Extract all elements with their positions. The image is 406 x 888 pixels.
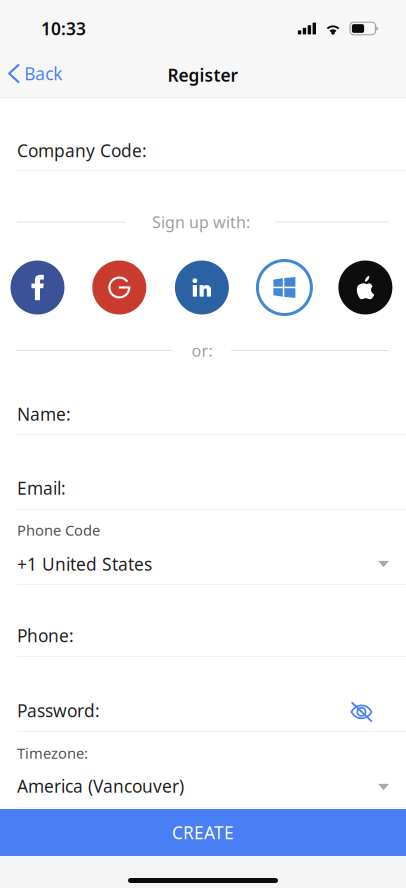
staticText: Password: (17, 699, 100, 722)
staticText: Back (24, 62, 62, 85)
staticText: +1 United States (17, 552, 152, 575)
staticText: Timezone: (17, 743, 88, 763)
button[interactable]: Sign up with Facebook (10, 260, 64, 314)
button[interactable]: Back (0, 51, 74, 95)
button[interactable]: Sign up with Microsoft (257, 260, 311, 314)
staticText: Register (167, 63, 238, 86)
button[interactable]: Sign up with Google (92, 260, 146, 314)
button[interactable]: CREATE (0, 809, 406, 856)
button[interactable]: Sign up with Apple (338, 260, 392, 314)
staticText: CREATE (172, 821, 234, 844)
staticText: America (Vancouver) (17, 774, 184, 797)
staticText: Phone: (17, 624, 74, 647)
staticText: Email: (17, 476, 66, 499)
staticText: Phone Code (17, 520, 100, 540)
staticText: Company Code: (17, 139, 147, 162)
staticText: Sign up with: (152, 211, 250, 233)
staticText: or: (191, 340, 212, 361)
staticText: 10:33 (41, 17, 86, 40)
button[interactable]: Show password (344, 697, 378, 727)
staticText: Name: (17, 402, 71, 425)
button[interactable]: Sign up with LinkedIn (175, 260, 229, 314)
